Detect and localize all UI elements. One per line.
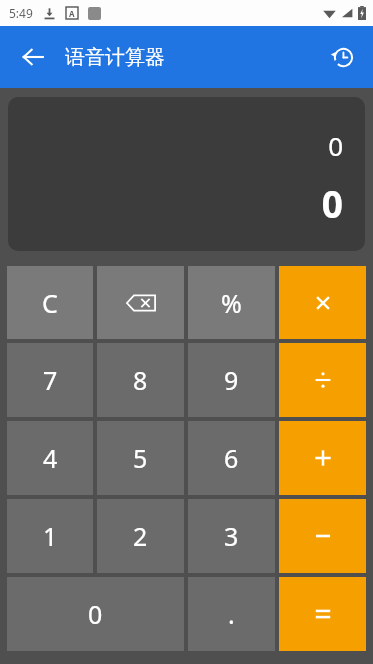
button[interactable]: 6 bbox=[188, 421, 275, 495]
staticText: 1 bbox=[43, 519, 58, 553]
staticText: 2 bbox=[133, 519, 148, 553]
staticText: 语音计算器 bbox=[65, 45, 165, 70]
button[interactable]: 8 bbox=[97, 343, 184, 417]
button[interactable]: Back bbox=[14, 38, 52, 76]
staticText: 5:49 bbox=[9, 5, 33, 21]
button[interactable]: 2 bbox=[97, 499, 184, 573]
button[interactable]: Plus bbox=[279, 421, 366, 495]
button[interactable]: C bbox=[7, 266, 93, 339]
staticText: A bbox=[69, 8, 75, 19]
button[interactable]: 5 bbox=[97, 421, 184, 495]
staticText: 9 bbox=[224, 363, 239, 397]
button[interactable]: History bbox=[321, 36, 363, 78]
button[interactable]: Equals bbox=[279, 577, 366, 651]
button[interactable]: 0 bbox=[7, 577, 184, 651]
staticText: 4 bbox=[43, 441, 58, 475]
button[interactable]: Backspace bbox=[97, 266, 184, 339]
button[interactable]: 7 bbox=[7, 343, 93, 417]
staticText: 8 bbox=[133, 363, 148, 397]
button[interactable]: Multiply bbox=[279, 266, 366, 339]
button[interactable]: 4 bbox=[7, 421, 93, 495]
staticText: 0 bbox=[8, 178, 343, 228]
staticText: 0 bbox=[88, 597, 103, 631]
staticText: % bbox=[221, 286, 242, 320]
button[interactable]: 9 bbox=[188, 343, 275, 417]
button[interactable]: . bbox=[188, 577, 275, 651]
button[interactable]: Minus bbox=[279, 499, 366, 573]
button[interactable]: 3 bbox=[188, 499, 275, 573]
staticText: C bbox=[42, 286, 58, 320]
staticText: . bbox=[228, 597, 235, 631]
staticText: 0 bbox=[8, 128, 343, 163]
staticText: 6 bbox=[224, 441, 239, 475]
button[interactable]: % bbox=[188, 266, 275, 339]
staticText: 7 bbox=[43, 363, 58, 397]
button[interactable]: Divide bbox=[279, 343, 366, 417]
button[interactable]: 1 bbox=[7, 499, 93, 573]
staticText: 5 bbox=[133, 441, 148, 475]
staticText: 3 bbox=[224, 519, 239, 553]
